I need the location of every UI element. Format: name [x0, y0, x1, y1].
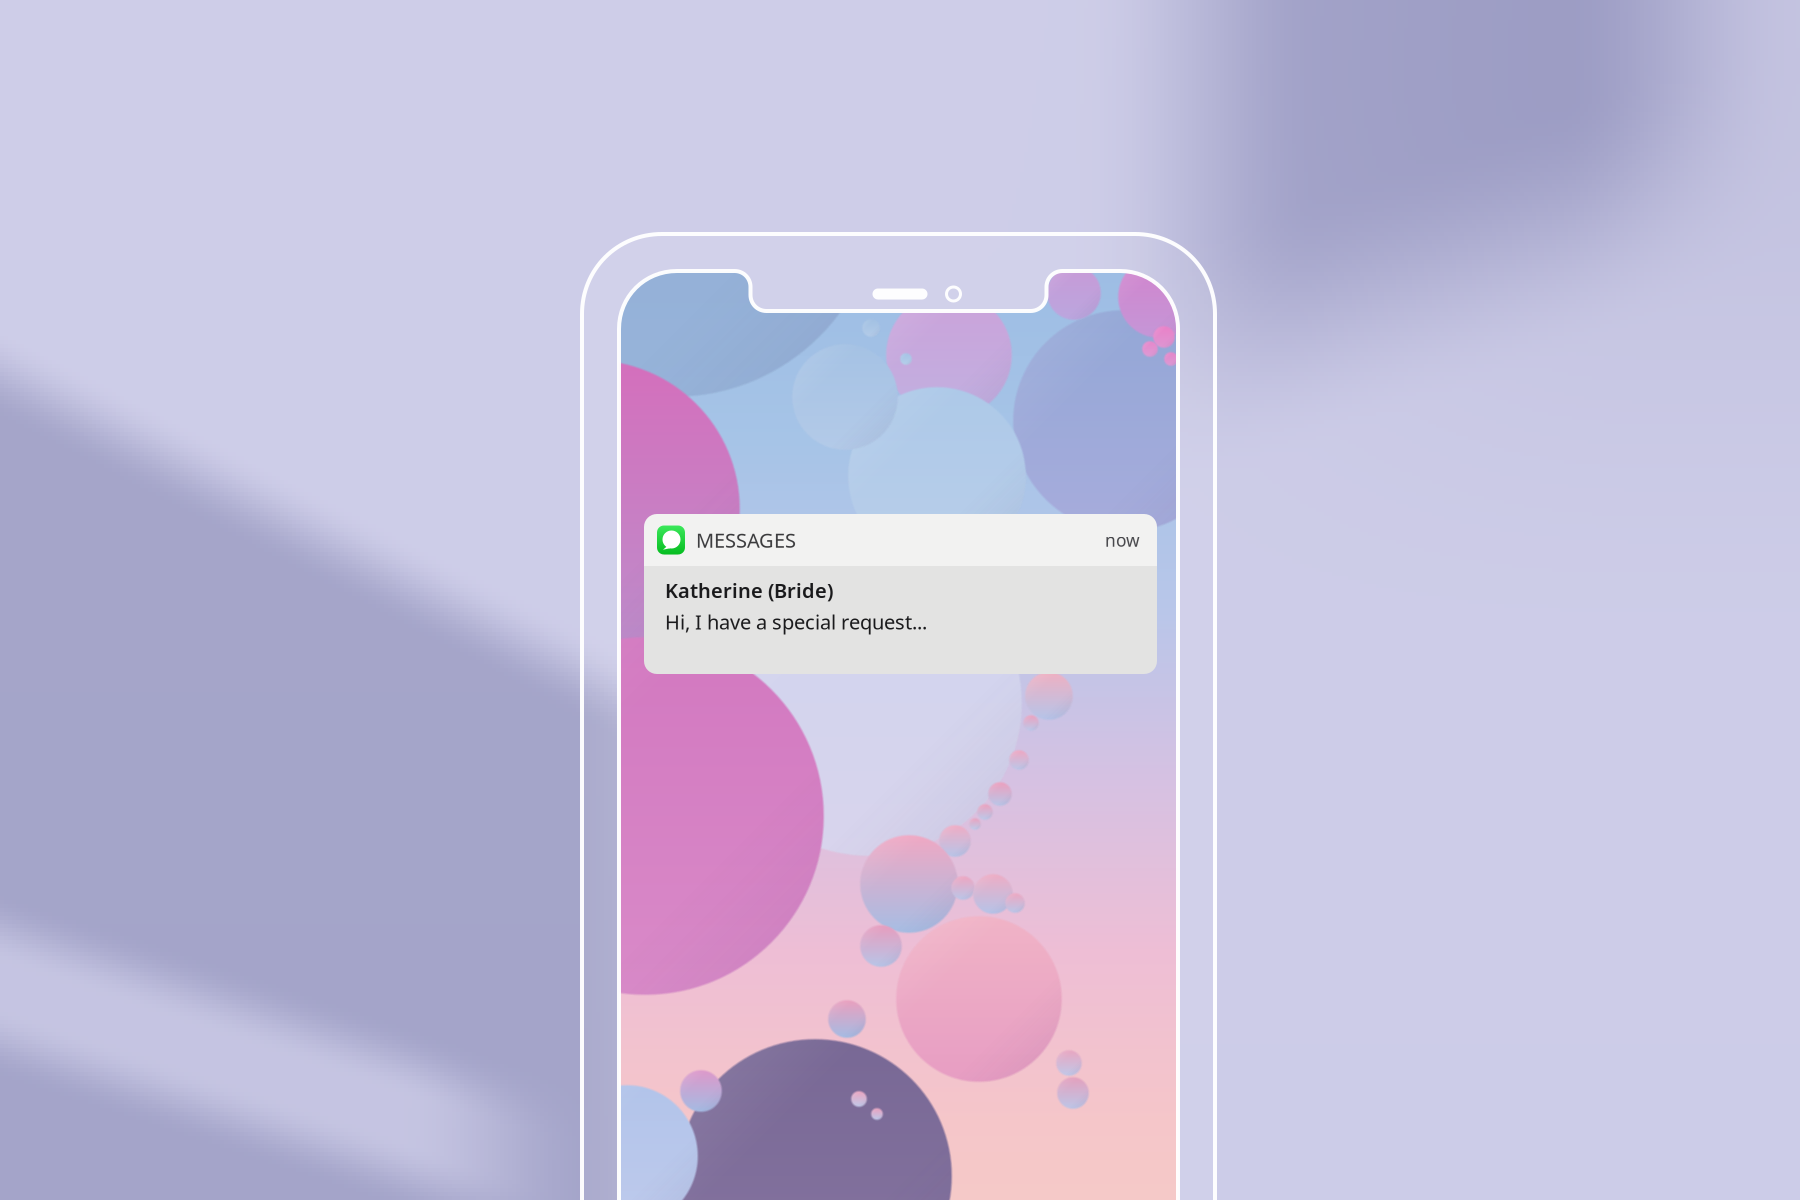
- button[interactable]: Messages notification from Katherine (Br…: [644, 514, 1157, 674]
- staticText: now: [1105, 528, 1140, 551]
- staticText: MESSAGES: [696, 527, 796, 553]
- staticText: Katherine (Bride): [665, 577, 833, 604]
- staticText: Hi, I have a special request...: [665, 609, 927, 635]
